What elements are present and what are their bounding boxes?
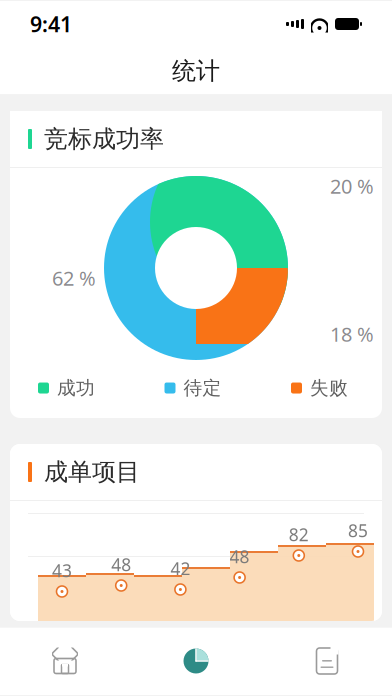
staticText: 待定 xyxy=(183,376,221,399)
staticText: 9:41 xyxy=(30,10,72,38)
staticText: 失败 xyxy=(310,376,348,399)
staticText: 43 xyxy=(52,559,72,582)
staticText: 成功 xyxy=(57,376,95,399)
staticText: 42 xyxy=(170,557,190,580)
button[interactable]: 文档 xyxy=(262,627,392,695)
staticText: 竞标成功率 xyxy=(44,124,164,154)
staticText: 成单项目 xyxy=(44,457,140,487)
staticText: 62 % xyxy=(52,265,96,291)
button[interactable]: 首页 xyxy=(0,627,130,695)
staticText: 20 % xyxy=(330,173,374,199)
staticText: 18 % xyxy=(330,321,374,347)
staticText: 统计 xyxy=(172,56,220,86)
staticText: 48 xyxy=(230,545,250,568)
staticText: 48 xyxy=(111,553,131,576)
staticText: 82 xyxy=(289,523,309,546)
button[interactable]: 统计 xyxy=(130,627,262,695)
staticText: 85 xyxy=(348,519,368,542)
